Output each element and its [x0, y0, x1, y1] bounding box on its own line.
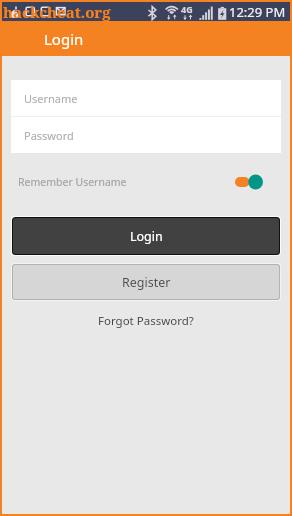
staticText: Forgot Password? [98, 313, 194, 329]
staticText: Register [122, 274, 171, 291]
button[interactable]: Username [11, 80, 281, 116]
button[interactable]: Remember Username toggle [235, 173, 263, 191]
staticText: Username [24, 91, 78, 106]
button[interactable]: Remember Username [18, 164, 263, 199]
staticText: Login [130, 228, 163, 245]
staticText: hackcheat.org [3, 2, 111, 21]
staticText: Password [24, 128, 74, 143]
staticText: 12:29 PM [229, 3, 286, 21]
button[interactable]: Login [13, 218, 279, 254]
staticText: Remember Username [18, 175, 127, 189]
button[interactable]: Password [11, 117, 281, 153]
staticText: 4G [181, 3, 193, 15]
button[interactable]: Forgot Password? [90, 310, 202, 332]
staticText: Login [44, 29, 84, 49]
button[interactable]: Register [13, 265, 279, 299]
